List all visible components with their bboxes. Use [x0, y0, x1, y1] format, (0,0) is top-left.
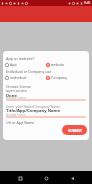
button[interactable]: Home	[40, 172, 52, 184]
staticText: App or website?	[6, 56, 35, 61]
staticText: Url or App Name	[6, 120, 35, 125]
button[interactable]: Company	[46, 75, 68, 80]
staticText: App	[10, 62, 17, 67]
staticText: Choose license	[6, 84, 32, 89]
button[interactable]: Recents	[14, 172, 26, 184]
button[interactable]: App	[5, 62, 17, 67]
staticText: individual	[10, 75, 27, 80]
staticText: hint text / name	[6, 113, 26, 117]
staticText: website	[51, 62, 65, 67]
staticText: Title/App/Company Name	[6, 108, 61, 114]
staticText: SUBMIT	[68, 128, 82, 133]
button[interactable]: website	[46, 62, 65, 67]
staticText: Individual or Company use	[6, 69, 52, 74]
staticText: Done	[6, 93, 17, 99]
staticText: open source	[6, 88, 27, 93]
staticText: Company	[51, 75, 68, 80]
staticText: hint text / name	[6, 96, 26, 100]
button[interactable]: individual	[5, 75, 27, 80]
staticText: 8:45	[84, 1, 91, 5]
button[interactable]: SUBMIT	[62, 125, 87, 135]
staticText: Enter your Name/Company Name	[6, 104, 60, 109]
button[interactable]: Back	[66, 172, 78, 184]
